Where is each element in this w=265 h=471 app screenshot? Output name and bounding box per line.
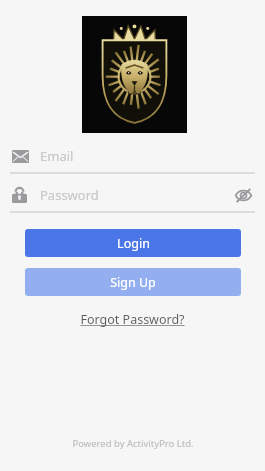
button[interactable]: Login xyxy=(25,229,241,257)
staticText: Password xyxy=(40,186,231,204)
staticText: Email xyxy=(40,147,74,165)
staticText: Forgot Password? xyxy=(80,311,185,328)
staticText: Sign Up xyxy=(110,274,156,291)
button[interactable]: Show password xyxy=(231,183,255,207)
button[interactable]: Password xyxy=(0,179,265,211)
button[interactable]: Email xyxy=(0,140,265,172)
button[interactable]: Forgot Password? xyxy=(74,308,191,331)
staticText: Powered by ActivityPro Ltd. xyxy=(72,437,194,450)
other: Email xyxy=(12,150,29,163)
staticText: Login xyxy=(117,235,150,252)
other: Password xyxy=(12,187,27,203)
button[interactable]: Sign Up xyxy=(25,268,241,296)
